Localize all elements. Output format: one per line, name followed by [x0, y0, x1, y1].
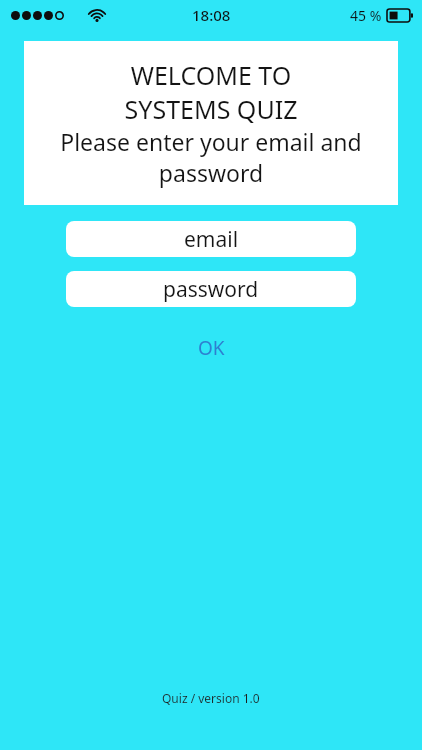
- staticText: WELCOME TO: [24, 58, 398, 92]
- button[interactable]: OK: [178, 329, 245, 367]
- button[interactable]: password: [66, 271, 356, 307]
- staticText: 45 %: [350, 6, 382, 25]
- staticText: Quiz / version 1.0: [162, 690, 260, 706]
- staticText: Please enter your email and: [24, 126, 398, 157]
- staticText: email: [184, 225, 239, 254]
- staticText: 18:08: [192, 5, 231, 25]
- other: Battery 45 percent: [387, 9, 413, 22]
- other: Signal strength: [10, 10, 65, 21]
- staticText: SYSTEMS QUIZ: [24, 92, 398, 126]
- button[interactable]: email: [66, 221, 356, 257]
- staticText: password: [163, 275, 259, 304]
- other: Wi-Fi: [88, 6, 106, 24]
- staticText: password: [24, 157, 398, 188]
- staticText: OK: [198, 335, 225, 361]
